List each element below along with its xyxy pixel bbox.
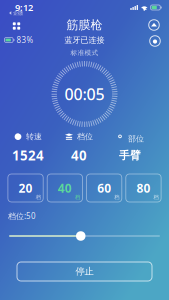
- staticText: 20: [19, 180, 33, 196]
- staticText: 80: [136, 180, 150, 196]
- staticText: 40: [71, 147, 87, 164]
- button[interactable]: 80: [126, 174, 161, 202]
- staticText: 转速: [26, 132, 42, 141]
- staticText: 9:12: [15, 1, 33, 14]
- staticText: 筋膜枪: [66, 18, 102, 32]
- staticText: 档: [75, 194, 80, 200]
- staticText: 标准模式: [70, 49, 98, 57]
- staticText: 档位: [77, 132, 93, 141]
- button[interactable]: 60: [86, 174, 122, 202]
- staticText: 档: [154, 194, 159, 200]
- staticText: 部位: [128, 134, 144, 144]
- button[interactable]: 20: [8, 174, 43, 202]
- staticText: 蓝牙已连接: [64, 35, 104, 45]
- staticText: 档位:50: [8, 211, 36, 221]
- button[interactable]: 40: [47, 174, 82, 202]
- button[interactable]: Bluetooth: [145, 17, 163, 33]
- button[interactable]: 停止: [17, 262, 152, 281]
- staticText: 83%: [16, 35, 33, 45]
- button[interactable]: Power: [147, 34, 163, 48]
- staticText: 40: [58, 180, 72, 196]
- staticText: 00:05: [64, 83, 104, 105]
- staticText: 档: [114, 194, 119, 200]
- staticText: 档: [36, 194, 41, 200]
- staticText: 企微: [13, 10, 23, 16]
- button[interactable]: Devices: [6, 18, 26, 34]
- staticText: 1524: [12, 147, 44, 164]
- staticText: 手臂: [119, 149, 141, 162]
- staticText: 60: [97, 180, 111, 196]
- staticText: 停止: [75, 266, 93, 277]
